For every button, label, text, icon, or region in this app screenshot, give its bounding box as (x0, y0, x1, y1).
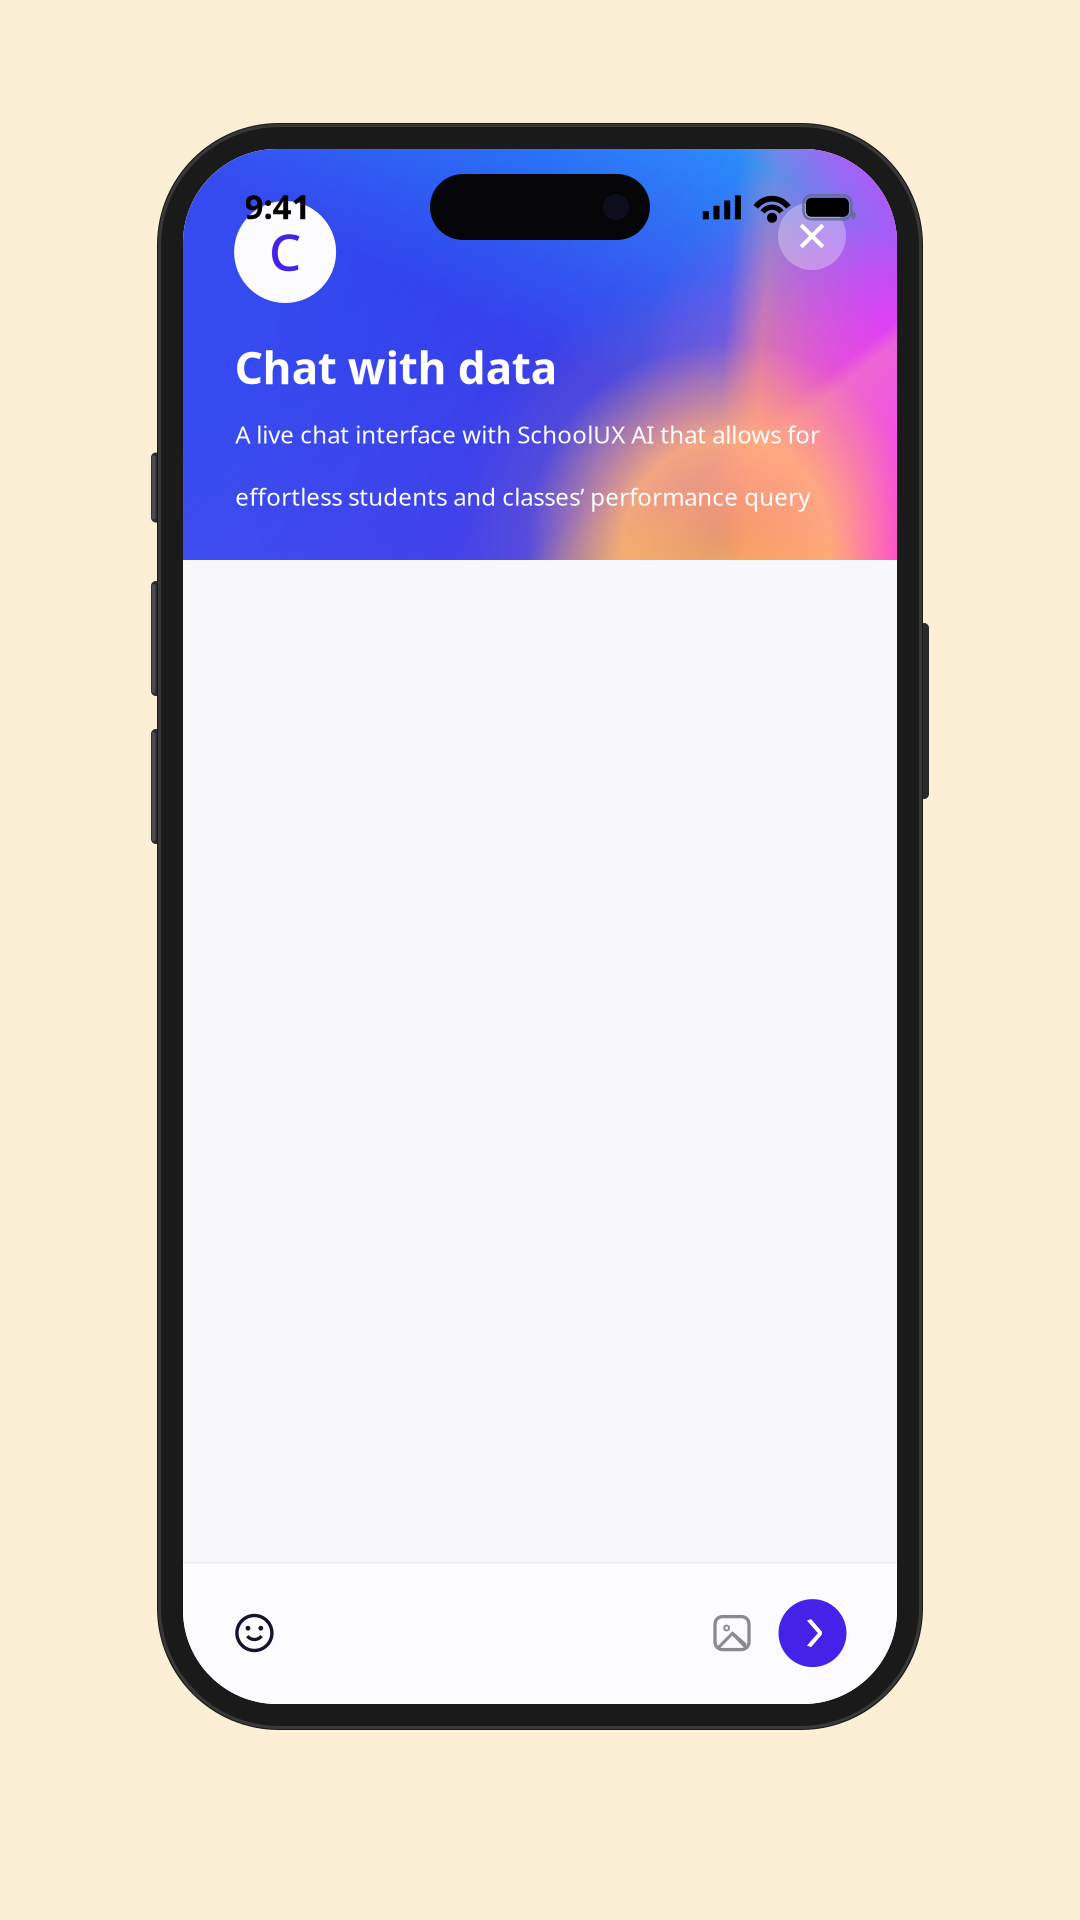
button[interactable]: Send (778, 1599, 846, 1667)
staticText: A live chat interface with SchoolUX AI t… (235, 418, 820, 450)
button[interactable]: Emoji (235, 1614, 273, 1652)
staticText: C (269, 217, 301, 285)
staticText: 9:41 (245, 184, 311, 229)
staticText: effortless students and classes’ perform… (235, 481, 810, 512)
button[interactable]: Close (778, 202, 846, 270)
button[interactable]: Attach photo (715, 1617, 749, 1650)
staticText: Chat with data (235, 338, 557, 396)
